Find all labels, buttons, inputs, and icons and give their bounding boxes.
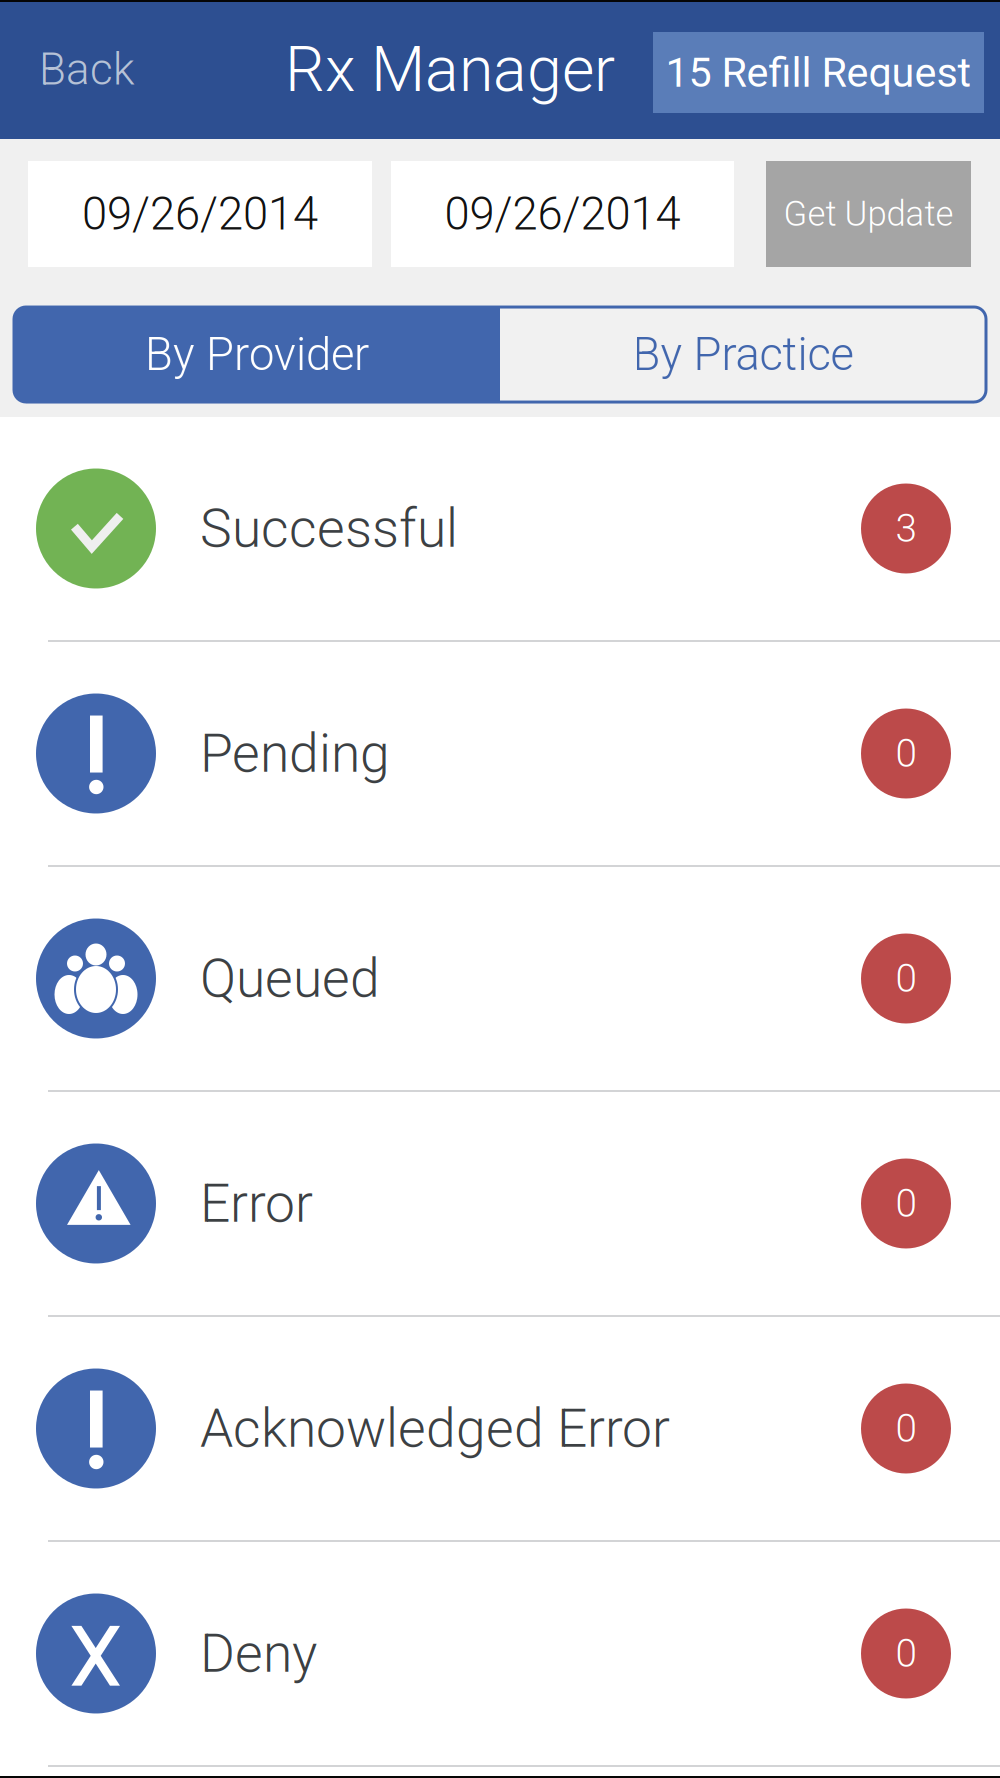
button[interactable]: Pending — [0, 642, 1000, 867]
button[interactable]: 15 Refill Request — [653, 32, 984, 113]
staticText: 3 — [895, 506, 916, 551]
staticText: Successful — [200, 497, 458, 560]
button[interactable]: By Practice — [500, 307, 986, 402]
staticText: 0 — [895, 1181, 916, 1226]
staticText: 0 — [895, 1631, 916, 1676]
staticText: 09/26/2014 — [444, 187, 680, 240]
button[interactable]: Error — [0, 1092, 1000, 1317]
button[interactable]: By Provider — [14, 307, 500, 402]
button[interactable]: Queued — [0, 867, 1000, 1092]
button[interactable]: Acknowledged Error — [0, 1317, 1000, 1542]
staticText: By Practice — [632, 328, 853, 381]
staticText: Get Update — [783, 194, 953, 234]
button[interactable]: Back — [0, 1, 159, 137]
staticText: By Provider — [145, 328, 369, 381]
staticText: 0 — [895, 1406, 916, 1451]
staticText: Queued — [200, 947, 380, 1010]
staticText: 09/26/2014 — [82, 187, 318, 240]
button[interactable]: Deny — [0, 1542, 1000, 1767]
staticText: Rx Manager — [285, 33, 615, 106]
staticText: 0 — [895, 956, 916, 1001]
button[interactable]: Get Update — [766, 161, 971, 267]
staticText: 15 Refill Request — [665, 48, 971, 97]
staticText: Pending — [200, 722, 390, 785]
staticText: Acknowledged Error — [200, 1397, 670, 1460]
button[interactable]: Successful — [0, 417, 1000, 642]
staticText: Error — [200, 1172, 313, 1235]
staticText: Deny — [200, 1622, 317, 1685]
staticText: 0 — [895, 731, 916, 776]
staticText: Back — [39, 44, 135, 95]
